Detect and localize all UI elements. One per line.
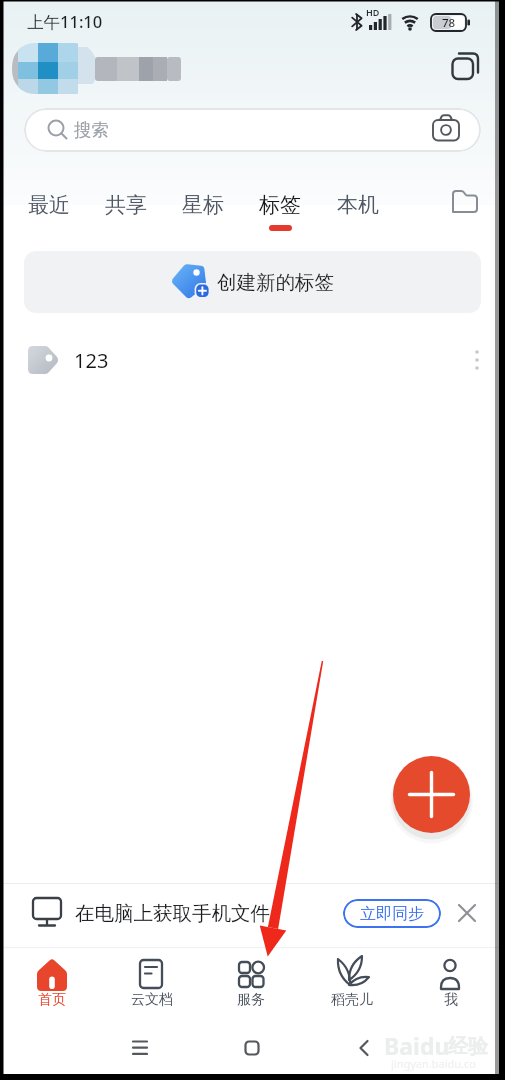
- button[interactable]: [0, 336, 505, 384]
- button[interactable]: 立即同步: [343, 899, 441, 928]
- button[interactable]: [111, 950, 191, 1020]
- button[interactable]: 本机: [335, 190, 381, 220]
- staticText: HD: [366, 6, 380, 18]
- staticText: 创建新的标签: [217, 270, 334, 295]
- staticText: 搜索: [74, 119, 109, 141]
- button[interactable]: [462, 340, 492, 380]
- staticText: jingyan.baidu.com: [391, 1056, 483, 1072]
- staticText: 上午11:10: [27, 10, 103, 33]
- staticText: 标签: [259, 192, 301, 218]
- button[interactable]: [24, 251, 481, 313]
- button[interactable]: [393, 756, 470, 833]
- button[interactable]: [116, 1026, 164, 1070]
- button[interactable]: [24, 108, 481, 152]
- staticText: 星标: [182, 192, 224, 218]
- staticText: 经验: [448, 1034, 488, 1059]
- staticText: 78: [442, 15, 456, 31]
- staticText: Baidu: [384, 1030, 450, 1061]
- button[interactable]: 最近: [26, 190, 72, 220]
- button[interactable]: 星标: [180, 190, 226, 220]
- staticText: 云文档: [131, 991, 173, 1009]
- button[interactable]: [340, 1026, 388, 1070]
- staticText: 稻壳儿: [331, 991, 373, 1009]
- button[interactable]: [311, 950, 391, 1020]
- button[interactable]: 共享: [103, 190, 149, 220]
- staticText: 最近: [28, 192, 70, 218]
- button[interactable]: [211, 950, 291, 1020]
- staticText: 服务: [237, 991, 265, 1009]
- button[interactable]: [453, 899, 481, 927]
- button[interactable]: [446, 50, 482, 84]
- staticText: 在电脑上获取手机文件: [75, 901, 270, 926]
- button[interactable]: [228, 1026, 276, 1070]
- staticText: 123: [74, 347, 109, 374]
- staticText: 首页: [38, 991, 66, 1009]
- staticText: 我: [444, 991, 458, 1009]
- staticText: 本机: [337, 192, 379, 218]
- button[interactable]: 标签: [257, 190, 303, 220]
- button[interactable]: [12, 950, 92, 1020]
- button[interactable]: [410, 950, 490, 1020]
- staticText: 共享: [105, 192, 147, 218]
- button[interactable]: [448, 186, 482, 218]
- staticText: 立即同步: [360, 904, 424, 924]
